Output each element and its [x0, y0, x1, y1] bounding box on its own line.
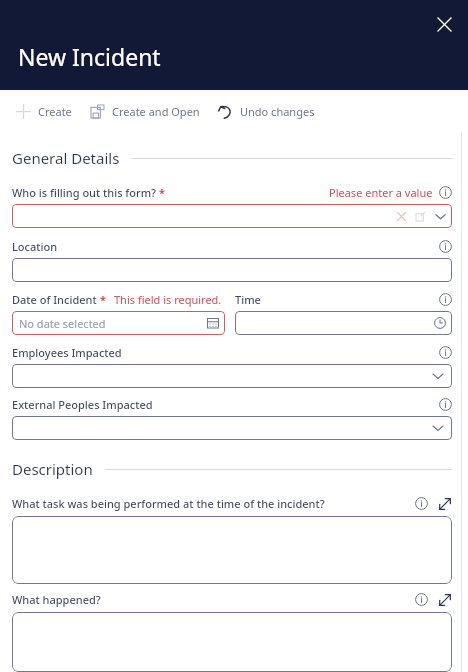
staticText: Please enter a value — [329, 185, 433, 200]
staticText: This field is required. — [114, 292, 222, 307]
button[interactable] — [12, 516, 452, 584]
button[interactable] — [12, 612, 452, 672]
button[interactable]: Pick time — [235, 311, 452, 335]
staticText: General Details — [12, 148, 120, 168]
button[interactable]: Pick date — [207, 317, 219, 329]
staticText: Date of Incident — [12, 292, 97, 307]
staticText: New Incident — [18, 41, 161, 72]
button[interactable]: Create — [14, 102, 72, 120]
button[interactable]: More information — [439, 398, 452, 411]
staticText: Create and Open — [112, 104, 200, 119]
staticText: * — [100, 292, 106, 307]
staticText: Create — [38, 104, 72, 119]
button[interactable] — [12, 204, 452, 228]
staticText: Location — [12, 239, 58, 254]
button[interactable]: Create and Open — [88, 102, 200, 120]
button[interactable]: More information — [439, 293, 452, 306]
staticText: What happened? — [12, 592, 101, 607]
button[interactable] — [12, 416, 452, 440]
button[interactable]: More information — [439, 346, 452, 359]
button[interactable]: Expand — [438, 497, 452, 511]
staticText: Undo changes — [240, 104, 315, 119]
staticText: External Peoples Impacted — [12, 397, 153, 412]
staticText: Who is filling out this form? — [12, 185, 156, 200]
button[interactable]: No date selected — [12, 311, 225, 335]
button[interactable] — [12, 258, 452, 282]
button[interactable]: Expand — [438, 593, 452, 607]
staticText: Description — [12, 459, 93, 479]
button[interactable]: More information — [439, 240, 452, 253]
button[interactable]: Close — [428, 8, 460, 40]
button[interactable]: More information — [439, 186, 452, 199]
staticText: What task was being performed at the tim… — [12, 496, 325, 511]
staticText: No date selected — [19, 316, 106, 331]
button[interactable] — [12, 364, 452, 388]
staticText: Time — [235, 292, 261, 307]
button[interactable]: More information — [415, 497, 428, 510]
button[interactable]: Undo changes — [216, 102, 315, 120]
button[interactable]: Pick time — [434, 317, 446, 329]
staticText: * — [159, 185, 165, 200]
button[interactable]: More information — [415, 593, 428, 606]
staticText: Employees Impacted — [12, 345, 122, 360]
